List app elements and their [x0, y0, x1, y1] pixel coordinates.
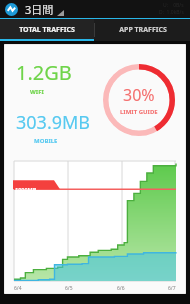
- staticText: 30%: [123, 84, 155, 106]
- staticText: 6/5: [65, 285, 73, 292]
- staticText: MOBILE: [34, 137, 58, 145]
- button[interactable]: 30%: [103, 64, 175, 136]
- button[interactable]: 1.2GB: [16, 59, 91, 145]
- staticText: 1.2GB: [16, 59, 72, 86]
- button[interactable]: TOTAL TRAFFICS: [0, 19, 94, 41]
- staticText: 6/7: [168, 285, 176, 292]
- staticText: 303.9MB: [16, 110, 91, 135]
- staticText: D: 1.0kB/s: [159, 9, 184, 16]
- staticText: WIFI: [30, 88, 44, 96]
- button[interactable]: APP TRAFFICS: [95, 19, 190, 41]
- staticText: LIMIT GUIDE: [120, 108, 158, 116]
- button[interactable]: 3日間: [25, 2, 64, 17]
- staticText: TOTAL TRAFFICS: [19, 25, 75, 35]
- other: App icon: [5, 3, 18, 16]
- staticText: 6/6: [117, 285, 125, 292]
- staticText: 1000MB: [15, 186, 37, 193]
- staticText: APP TRAFFICS: [119, 25, 167, 35]
- staticText: 3日間: [25, 2, 54, 17]
- staticText: 6/4: [14, 285, 22, 292]
- staticText: U: 0B/s: [163, 2, 184, 9]
